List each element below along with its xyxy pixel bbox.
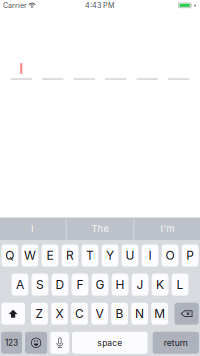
button[interactable]: H (112, 274, 128, 296)
staticText: G (95, 277, 104, 292)
button[interactable]: S (31, 274, 48, 296)
staticText: Q (5, 248, 14, 263)
staticText: H (115, 277, 124, 292)
staticText: I (31, 223, 34, 234)
staticText: return (164, 338, 188, 348)
staticText: D (55, 277, 64, 292)
button[interactable]: O (162, 244, 178, 266)
staticText: R (66, 248, 74, 263)
staticText: K (156, 277, 164, 292)
staticText: V (95, 306, 103, 321)
staticText: Carrier (3, 1, 27, 10)
button[interactable]: Shift (1, 303, 25, 325)
button[interactable]: F (72, 274, 88, 296)
staticText: O (166, 248, 175, 263)
button[interactable]: G (92, 274, 108, 296)
button[interactable]: T (82, 244, 98, 266)
button[interactable]: E (42, 244, 58, 266)
button[interactable]: L (172, 274, 188, 296)
button[interactable]: space (72, 332, 148, 354)
staticText: A (16, 277, 24, 292)
staticText: Y (106, 248, 114, 263)
staticText: E (46, 248, 53, 263)
button[interactable]: C (71, 303, 88, 325)
staticText: C (75, 306, 84, 321)
staticText: I'm (160, 223, 174, 234)
staticText: L (177, 277, 184, 292)
button[interactable]: I (0, 217, 66, 240)
staticText: B (116, 306, 124, 321)
button[interactable]: I'm (134, 217, 200, 240)
button[interactable]: Delete (174, 303, 199, 325)
button[interactable]: R (62, 244, 78, 266)
staticText: M (154, 306, 165, 321)
button[interactable]: Y (102, 244, 118, 266)
button[interactable]: Z (31, 303, 48, 325)
staticText: space (97, 338, 122, 348)
button[interactable]: Emoji (25, 332, 47, 354)
button[interactable]: K (152, 274, 168, 296)
staticText: 4:43 PM (85, 1, 115, 10)
staticText: J (137, 277, 144, 292)
button[interactable]: 123 (1, 332, 22, 354)
button[interactable]: V (91, 303, 108, 325)
button[interactable]: M (151, 303, 168, 325)
staticText: X (55, 306, 63, 321)
button[interactable]: N (131, 303, 148, 325)
button[interactable]: return (153, 332, 199, 354)
button[interactable]: I (142, 244, 158, 266)
staticText: W (24, 248, 36, 263)
staticText: Z (35, 306, 43, 321)
staticText: F (76, 277, 83, 292)
button[interactable]: Q (1, 244, 18, 266)
button[interactable]: U (122, 244, 138, 266)
staticText: U (125, 248, 134, 263)
button[interactable]: X (51, 303, 68, 325)
button[interactable]: A (11, 274, 28, 296)
staticText: I (149, 248, 152, 263)
staticText: P (186, 248, 194, 263)
staticText: The (91, 223, 108, 234)
button[interactable]: P (182, 244, 198, 266)
button[interactable]: Dictation (50, 332, 69, 354)
staticText: 123 (5, 338, 18, 348)
staticText: N (135, 306, 144, 321)
button[interactable]: W (21, 244, 38, 266)
button[interactable]: D (52, 274, 68, 296)
staticText: S (36, 277, 44, 292)
button[interactable]: B (111, 303, 128, 325)
button[interactable]: J (132, 274, 148, 296)
button[interactable]: The (67, 217, 133, 240)
staticText: T (86, 248, 94, 263)
